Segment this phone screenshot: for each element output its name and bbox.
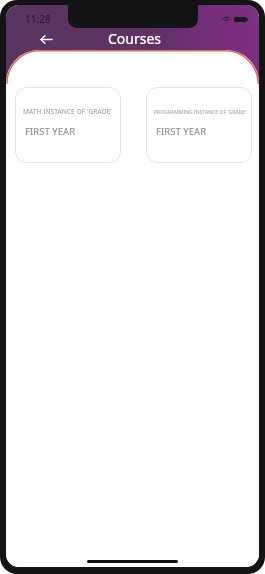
staticText: FIRST YEAR	[156, 125, 207, 138]
button[interactable]: Back	[36, 29, 56, 49]
staticText: Courses	[108, 29, 162, 48]
button[interactable]: PROGRAMMING INSTANCE OF 'GRADE'	[146, 87, 252, 163]
staticText: MATH INSTANCE OF 'GRADE'	[23, 107, 112, 116]
staticText: 11:28	[25, 12, 51, 26]
button[interactable]: MATH INSTANCE OF 'GRADE'	[15, 87, 121, 163]
staticText: FIRST YEAR	[25, 125, 76, 138]
staticText: PROGRAMMING INSTANCE OF 'GRADE'	[154, 109, 247, 116]
